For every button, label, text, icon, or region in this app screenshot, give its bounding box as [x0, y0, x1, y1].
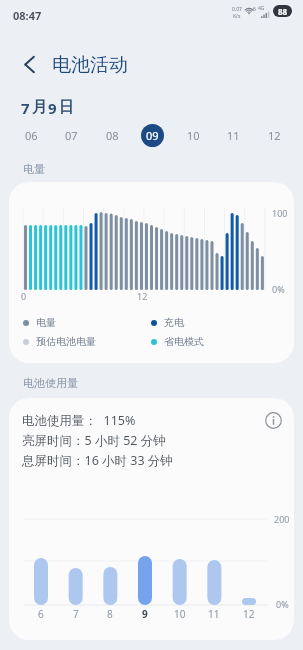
button[interactable]: 06 — [20, 124, 43, 147]
staticText: 6 — [38, 607, 44, 621]
staticText: 07 — [65, 128, 78, 143]
button[interactable]: 12 — [263, 124, 286, 147]
staticText: 08 — [106, 128, 119, 143]
button[interactable]: 10 — [182, 124, 205, 147]
staticText: 6 — [253, 6, 256, 13]
staticText: 0.07 — [232, 6, 242, 13]
button[interactable]: 07 — [60, 124, 83, 147]
staticText: 0 — [21, 290, 27, 302]
staticText: 7 — [21, 98, 30, 118]
button[interactable]: Back — [10, 42, 48, 86]
staticText: 0% — [272, 283, 285, 295]
staticText: K/s — [233, 13, 241, 20]
staticText: 电池活动 — [52, 53, 128, 77]
staticText: 电量 — [23, 162, 45, 176]
staticText: 亮屏时间：5 小时 52 分钟 — [22, 432, 166, 449]
staticText: 09 — [146, 128, 159, 143]
staticText: 11 — [208, 607, 220, 621]
staticText: 100 — [272, 207, 288, 219]
staticText: 息屏时间：16 小时 33 分钟 — [22, 452, 173, 469]
staticText: 电量 — [36, 316, 56, 329]
staticText: 7 — [73, 607, 79, 621]
staticText: 9 — [142, 607, 148, 621]
staticText: 08:47 — [13, 8, 42, 23]
staticText: 200 — [274, 513, 290, 525]
staticText: 10 — [174, 607, 186, 621]
staticText: 12 — [243, 607, 255, 621]
staticText: 88 — [278, 6, 288, 17]
staticText: 11 — [227, 128, 240, 143]
button[interactable]: Info — [261, 408, 285, 432]
staticText: 月 — [32, 98, 47, 117]
staticText: 省电模式 — [164, 335, 204, 348]
staticText: 06 — [25, 128, 38, 143]
staticText: 预估电池电量 — [36, 335, 96, 348]
staticText: 4G — [258, 5, 265, 12]
staticText: 10 — [187, 128, 200, 143]
button[interactable]: 09 — [141, 124, 164, 147]
staticText: 8 — [107, 607, 113, 621]
staticText: 日 — [59, 98, 74, 117]
staticText: 9 — [48, 98, 57, 118]
staticText: 0% — [276, 598, 289, 610]
staticText: 电池使用量： 115% — [22, 412, 136, 429]
button[interactable]: 11 — [222, 124, 245, 147]
staticText: 电池使用量 — [23, 376, 78, 390]
staticText: 12 — [137, 290, 148, 302]
staticText: 12 — [268, 128, 281, 143]
staticText: 充电 — [164, 316, 184, 329]
button[interactable]: 08 — [101, 124, 124, 147]
